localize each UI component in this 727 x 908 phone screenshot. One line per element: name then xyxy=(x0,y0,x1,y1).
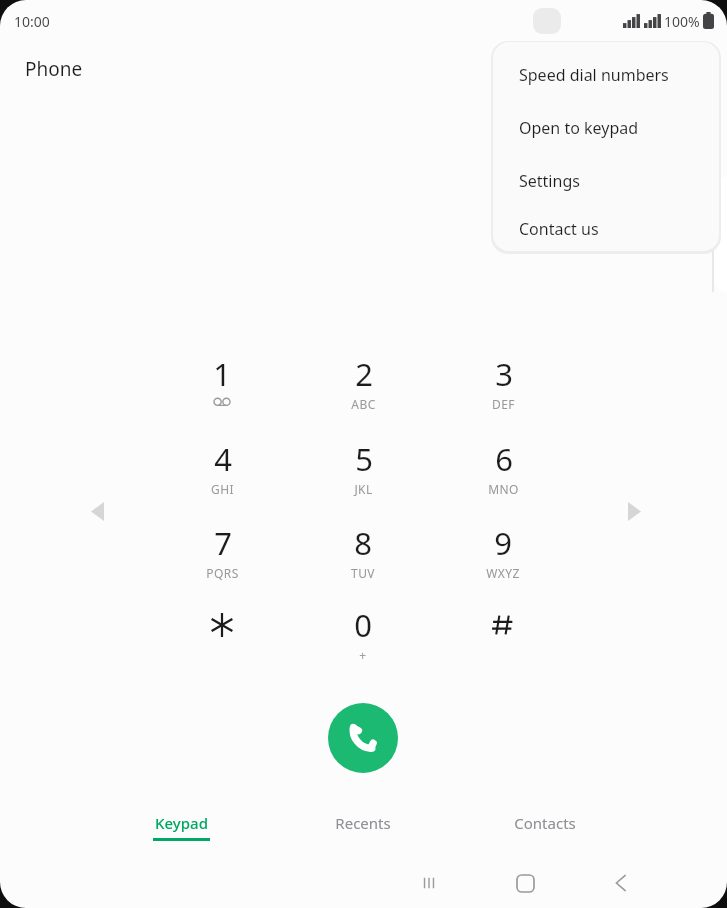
button[interactable]: 1 xyxy=(175,352,269,424)
button[interactable]: Home xyxy=(498,860,552,906)
staticText: 3 xyxy=(495,353,513,395)
staticText: Contact us xyxy=(519,218,599,240)
staticText: ABC xyxy=(351,396,376,412)
staticText: Contacts xyxy=(514,813,576,833)
staticText: DEF xyxy=(492,396,515,412)
button[interactable]: 6 xyxy=(456,437,550,509)
staticText: GHI xyxy=(211,481,234,497)
button[interactable]: 5 xyxy=(316,437,410,509)
staticText: 6 xyxy=(495,438,513,480)
button[interactable]: 9 xyxy=(456,521,550,593)
button[interactable]: Contacts xyxy=(475,806,615,848)
button[interactable]: 3 xyxy=(456,352,550,424)
staticText: WXYZ xyxy=(486,565,520,581)
button[interactable]: 2 xyxy=(316,352,410,424)
button[interactable]: 4 xyxy=(175,437,269,509)
staticText: 7 xyxy=(214,522,232,564)
button[interactable]: Settings xyxy=(493,154,719,207)
button[interactable]: Previous page xyxy=(78,492,116,530)
button[interactable]: 0 xyxy=(316,603,410,675)
button[interactable]: Back xyxy=(594,860,648,906)
button[interactable]: Recent apps xyxy=(402,860,456,906)
staticText: MNO xyxy=(488,481,519,497)
staticText: JKL xyxy=(354,481,373,497)
staticText: 2 xyxy=(355,353,373,395)
button[interactable]: 7 xyxy=(175,521,269,593)
button[interactable]: Call xyxy=(328,703,398,773)
staticText: 10:00 xyxy=(14,12,50,31)
staticText: + xyxy=(359,647,367,663)
button[interactable]: Speed dial numbers xyxy=(493,48,719,101)
button[interactable] xyxy=(175,603,269,675)
staticText: 8 xyxy=(354,522,372,564)
button[interactable]: Open to keypad xyxy=(493,101,719,154)
staticText: 0 xyxy=(354,604,372,646)
staticText: 100% xyxy=(664,12,700,31)
button[interactable]: Contact us xyxy=(493,207,719,251)
staticText: TUV xyxy=(351,565,375,581)
staticText: 1 xyxy=(213,353,231,395)
staticText: 4 xyxy=(214,438,232,480)
button[interactable]: 8 xyxy=(316,521,410,593)
staticText: Keypad xyxy=(155,813,208,833)
staticText: Speed dial numbers xyxy=(519,64,669,86)
button[interactable]: Keypad xyxy=(111,806,251,848)
button[interactable] xyxy=(456,603,550,675)
staticText: Recents xyxy=(335,813,391,833)
staticText: PQRS xyxy=(206,565,239,581)
button[interactable]: Next page xyxy=(615,492,653,530)
staticText: Phone xyxy=(25,56,83,82)
staticText: Open to keypad xyxy=(519,117,639,139)
staticText: Settings xyxy=(519,170,580,192)
staticText: 5 xyxy=(355,438,373,480)
staticText: 9 xyxy=(494,522,512,564)
button[interactable]: Recents xyxy=(293,806,433,848)
